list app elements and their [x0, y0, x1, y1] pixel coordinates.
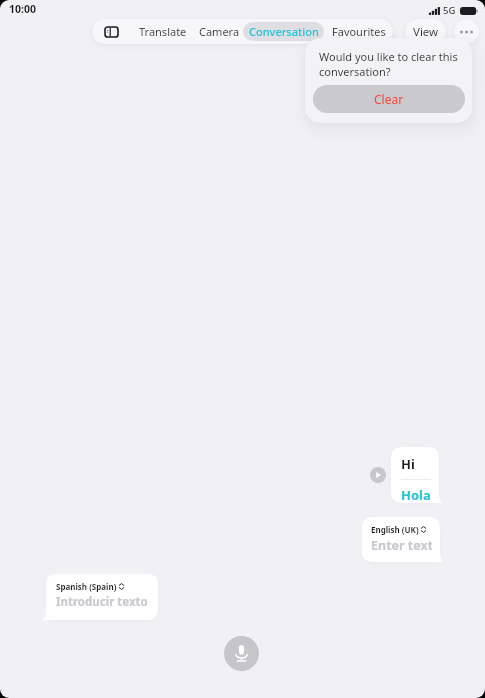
button[interactable]: Favourites — [329, 19, 389, 44]
staticText: English (UK) — [371, 524, 419, 535]
button[interactable]: Clear — [313, 85, 465, 113]
button[interactable]: Play — [370, 467, 386, 483]
button[interactable]: More options — [454, 19, 479, 44]
staticText: View — [413, 24, 439, 40]
button[interactable]: Microphone — [224, 636, 259, 671]
staticText: 10:00 — [9, 2, 36, 16]
staticText: Camera — [199, 24, 240, 39]
staticText: Introducir texto — [56, 594, 148, 610]
staticText: Conversation — [249, 24, 319, 39]
button[interactable]: View — [405, 19, 446, 44]
staticText: Favourites — [332, 24, 386, 39]
staticText: Translate — [139, 24, 187, 39]
button[interactable]: English (UK) — [362, 517, 440, 562]
button[interactable]: Show sidebar — [96, 19, 126, 44]
staticText: Spanish (Spain) — [56, 581, 117, 592]
button[interactable]: Translate — [132, 19, 193, 44]
button[interactable]: Camera — [195, 19, 244, 44]
staticText: Hola — [401, 486, 431, 503]
button[interactable]: Spanish (Spain) — [46, 574, 158, 620]
staticText: Hi — [401, 455, 415, 473]
staticText: Enter text — [371, 537, 432, 554]
staticText: Would you like to clear this conversatio… — [319, 49, 464, 79]
button[interactable]: Hi — [391, 447, 439, 503]
staticText: Clear — [374, 91, 404, 107]
button[interactable]: Conversation — [243, 22, 324, 41]
staticText: 5G — [443, 4, 456, 17]
